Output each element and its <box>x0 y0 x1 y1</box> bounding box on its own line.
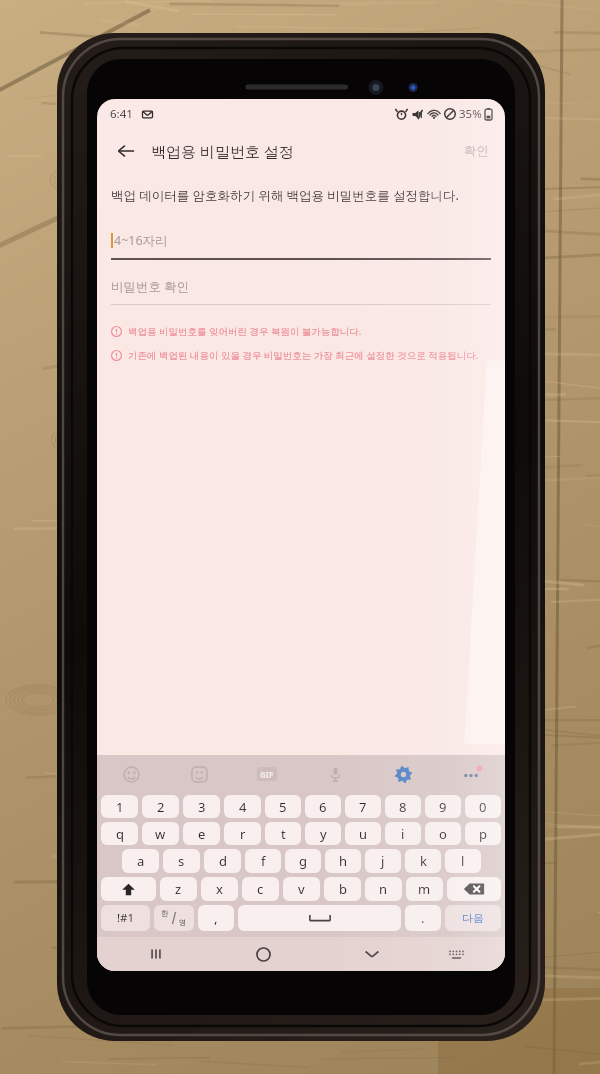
button[interactable]: Emoji <box>97 755 165 793</box>
button[interactable]: , <box>198 905 234 931</box>
button[interactable]: a <box>122 849 159 873</box>
staticText: 7 <box>359 798 367 816</box>
staticText: 5 <box>279 798 287 816</box>
button[interactable]: 5 <box>265 795 301 818</box>
button[interactable]: c <box>242 877 279 901</box>
button[interactable]: 7 <box>345 795 381 818</box>
button[interactable]: Home <box>235 937 292 971</box>
button[interactable]: 0 <box>465 795 501 818</box>
staticText: k <box>420 852 427 870</box>
button[interactable]: GIF <box>233 755 301 793</box>
button[interactable]: p <box>465 822 501 845</box>
button[interactable]: !#1 <box>101 905 150 931</box>
button[interactable]: 8 <box>385 795 421 818</box>
staticText: 비밀번호 확인 <box>111 278 190 295</box>
button[interactable]: d <box>204 849 241 873</box>
button[interactable]: n <box>365 877 402 901</box>
staticText: g <box>299 852 307 870</box>
staticText: 6 <box>319 798 327 816</box>
staticText: y <box>320 825 327 843</box>
staticText: 백업 데이터를 암호화하기 위해 백업용 비밀번호를 설정합니다. <box>111 187 459 204</box>
staticText: 다음 <box>462 911 484 925</box>
button[interactable]: i <box>385 822 421 845</box>
button[interactable]: 3 <box>183 795 220 818</box>
button[interactable]: r <box>224 822 261 845</box>
button[interactable]: 확인 <box>460 137 493 165</box>
staticText: c <box>257 880 264 898</box>
staticText: 0 <box>479 798 487 816</box>
button[interactable]: Sticker <box>165 755 233 793</box>
button[interactable]: 다음 <box>445 905 501 931</box>
staticText: 4 <box>239 798 247 816</box>
staticText: 1 <box>116 798 124 816</box>
staticText: m <box>418 880 431 898</box>
button[interactable]: 4~16자리 <box>97 232 505 260</box>
button[interactable]: y <box>305 822 341 845</box>
button[interactable]: More options <box>437 755 505 793</box>
staticText: , <box>214 909 218 927</box>
button[interactable]: e <box>183 822 220 845</box>
button[interactable]: 6 <box>305 795 341 818</box>
staticText: b <box>339 880 347 898</box>
staticText: h <box>339 852 348 870</box>
staticText: o <box>439 825 447 843</box>
staticText: t <box>281 825 286 843</box>
staticText: a <box>137 852 145 870</box>
button[interactable]: s <box>163 849 200 873</box>
staticText: l <box>461 852 465 870</box>
button[interactable]: g <box>285 849 321 873</box>
staticText: u <box>359 825 368 843</box>
button[interactable]: h <box>325 849 361 873</box>
button[interactable]: w <box>142 822 179 845</box>
staticText: 4~16자리 <box>114 232 168 249</box>
button[interactable]: 1 <box>101 795 138 818</box>
button[interactable]: v <box>283 877 320 901</box>
button[interactable]: 4 <box>224 795 261 818</box>
staticText: 확인 <box>464 143 489 159</box>
button[interactable]: Keyboard settings <box>369 755 437 793</box>
button[interactable]: Voice input <box>301 755 369 793</box>
staticText: e <box>198 825 206 843</box>
button[interactable]: l <box>445 849 481 873</box>
button[interactable]: Recents <box>127 937 184 971</box>
staticText: 8 <box>399 798 407 816</box>
button[interactable]: m <box>406 877 443 901</box>
staticText: d <box>219 852 227 870</box>
staticText: 35% <box>459 106 482 122</box>
button[interactable]: Shift <box>101 877 156 901</box>
staticText: 6:41 <box>110 106 133 122</box>
staticText: 3 <box>198 798 206 816</box>
button[interactable]: o <box>425 822 461 845</box>
staticText: GIF <box>260 769 274 780</box>
button[interactable]: Change keyboard <box>428 937 485 971</box>
button[interactable]: u <box>345 822 381 845</box>
button[interactable]: k <box>405 849 441 873</box>
button[interactable]: f <box>245 849 281 873</box>
staticText: n <box>379 880 388 898</box>
button[interactable]: Korean English toggle <box>154 905 194 931</box>
button[interactable]: x <box>201 877 238 901</box>
staticText: 백업용 비밀번호를 잊어버린 경우 복원이 불가능합니다. <box>128 325 362 338</box>
button[interactable]: t <box>265 822 301 845</box>
staticText: s <box>178 852 185 870</box>
staticText: r <box>240 825 246 843</box>
staticText: v <box>298 880 305 898</box>
button[interactable]: Hide keyboard <box>343 937 400 971</box>
button[interactable]: 비밀번호 확인 <box>97 278 505 305</box>
staticText: 기존에 백업된 내용이 있을 경우 비밀번호는 가장 최근에 설정한 것으로 적… <box>128 349 479 362</box>
staticText: i <box>401 825 405 843</box>
button[interactable]: . <box>405 905 441 931</box>
button[interactable]: b <box>324 877 361 901</box>
button[interactable]: z <box>160 877 197 901</box>
staticText: 2 <box>157 798 165 816</box>
button[interactable]: Space <box>238 905 401 931</box>
staticText: f <box>261 852 266 870</box>
button[interactable]: Backspace <box>447 877 501 901</box>
button[interactable]: 9 <box>425 795 461 818</box>
staticText: j <box>381 852 385 870</box>
button[interactable]: j <box>365 849 401 873</box>
button[interactable]: Back <box>109 134 143 168</box>
button[interactable]: q <box>101 822 138 845</box>
staticText: 영 <box>179 918 187 927</box>
button[interactable]: 2 <box>142 795 179 818</box>
